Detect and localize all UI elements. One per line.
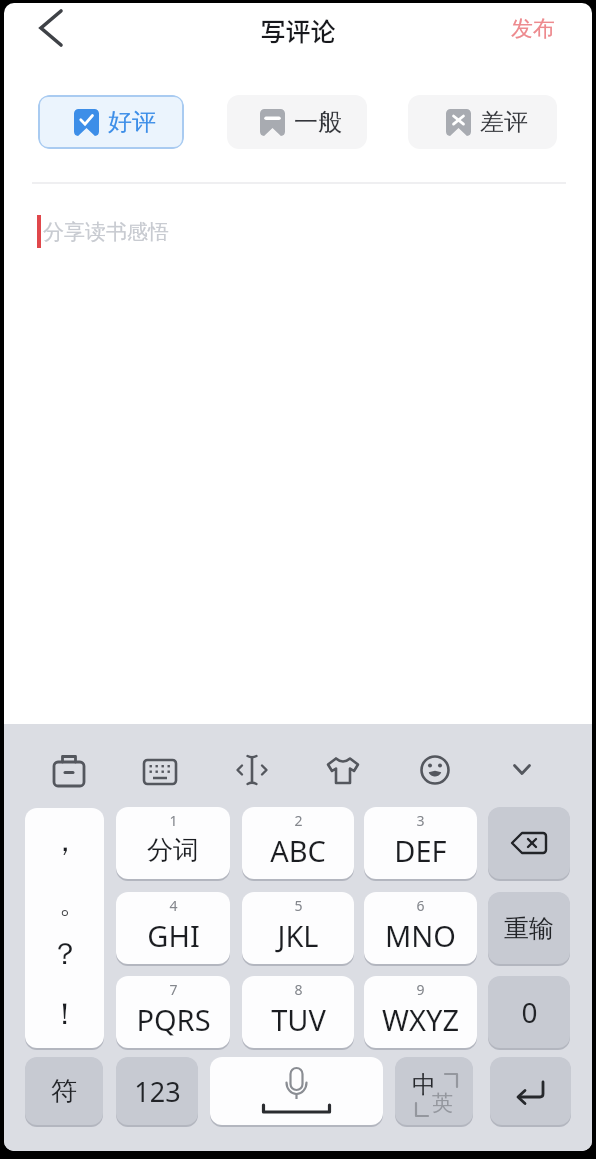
button[interactable]: 差评 — [408, 95, 557, 149]
button[interactable] — [210, 1057, 383, 1125]
staticText: 一般 — [294, 107, 342, 137]
button[interactable] — [488, 807, 570, 879]
staticText: ， — [50, 822, 80, 860]
staticText: ？ — [50, 935, 80, 973]
button[interactable] — [232, 750, 272, 790]
staticText: 3 — [416, 811, 425, 830]
button[interactable]: 中 — [395, 1057, 473, 1125]
staticText: 英 — [432, 1090, 453, 1116]
button[interactable] — [49, 750, 89, 790]
staticText: 6 — [416, 896, 425, 915]
button[interactable] — [140, 750, 180, 790]
staticText: 9 — [416, 980, 425, 999]
staticText: MNO — [385, 916, 456, 955]
staticText: 差评 — [480, 107, 528, 137]
staticText: DEF — [394, 831, 447, 870]
staticText: 分享读书感悟 — [43, 219, 169, 245]
button[interactable] — [415, 750, 455, 790]
button[interactable]: 0 — [488, 976, 570, 1048]
button[interactable]: 8 — [242, 976, 354, 1048]
staticText: GHI — [147, 916, 200, 955]
button[interactable]: 好评 — [38, 95, 184, 149]
staticText: 发布 — [511, 15, 555, 43]
staticText: TUV — [271, 1000, 326, 1039]
button[interactable]: 符 — [25, 1057, 103, 1125]
staticText: 4 — [169, 896, 178, 915]
button[interactable]: 一般 — [227, 95, 367, 149]
button[interactable]: 2 — [242, 807, 354, 879]
staticText: PQRS — [136, 1000, 211, 1039]
button[interactable]: 123 — [116, 1057, 198, 1125]
staticText: 8 — [294, 980, 303, 999]
button[interactable]: 1 — [116, 807, 230, 879]
button[interactable] — [502, 750, 542, 790]
staticText: JKL — [277, 916, 319, 955]
button[interactable]: 发布 — [498, 8, 568, 50]
staticText: 0 — [521, 993, 538, 1031]
button[interactable] — [24, 6, 76, 54]
staticText: 7 — [169, 980, 178, 999]
staticText: 123 — [134, 1073, 181, 1110]
button[interactable]: 7 — [116, 976, 230, 1048]
staticText: 符 — [51, 1075, 77, 1108]
staticText: 1 — [169, 811, 178, 830]
staticText: 中 — [412, 1070, 436, 1100]
staticText: 2 — [294, 811, 303, 830]
staticText: ABC — [270, 831, 326, 870]
button[interactable]: 5 — [242, 892, 354, 964]
button[interactable]: 3 — [364, 807, 477, 879]
staticText: 分词 — [147, 834, 199, 867]
button[interactable] — [490, 1057, 571, 1125]
staticText: ！ — [50, 995, 80, 1033]
button[interactable]: ， — [25, 808, 104, 1048]
button[interactable]: 6 — [364, 892, 477, 964]
staticText: WXYZ — [382, 1000, 459, 1039]
staticText: 写评论 — [260, 12, 336, 48]
staticText: 重输 — [504, 913, 554, 944]
button[interactable]: 重输 — [488, 892, 570, 964]
staticText: 好评 — [108, 107, 156, 137]
staticText: 5 — [294, 896, 303, 915]
staticText: 。 — [59, 886, 87, 921]
button[interactable] — [323, 750, 363, 790]
button[interactable]: 4 — [116, 892, 230, 964]
button[interactable]: 9 — [364, 976, 477, 1048]
